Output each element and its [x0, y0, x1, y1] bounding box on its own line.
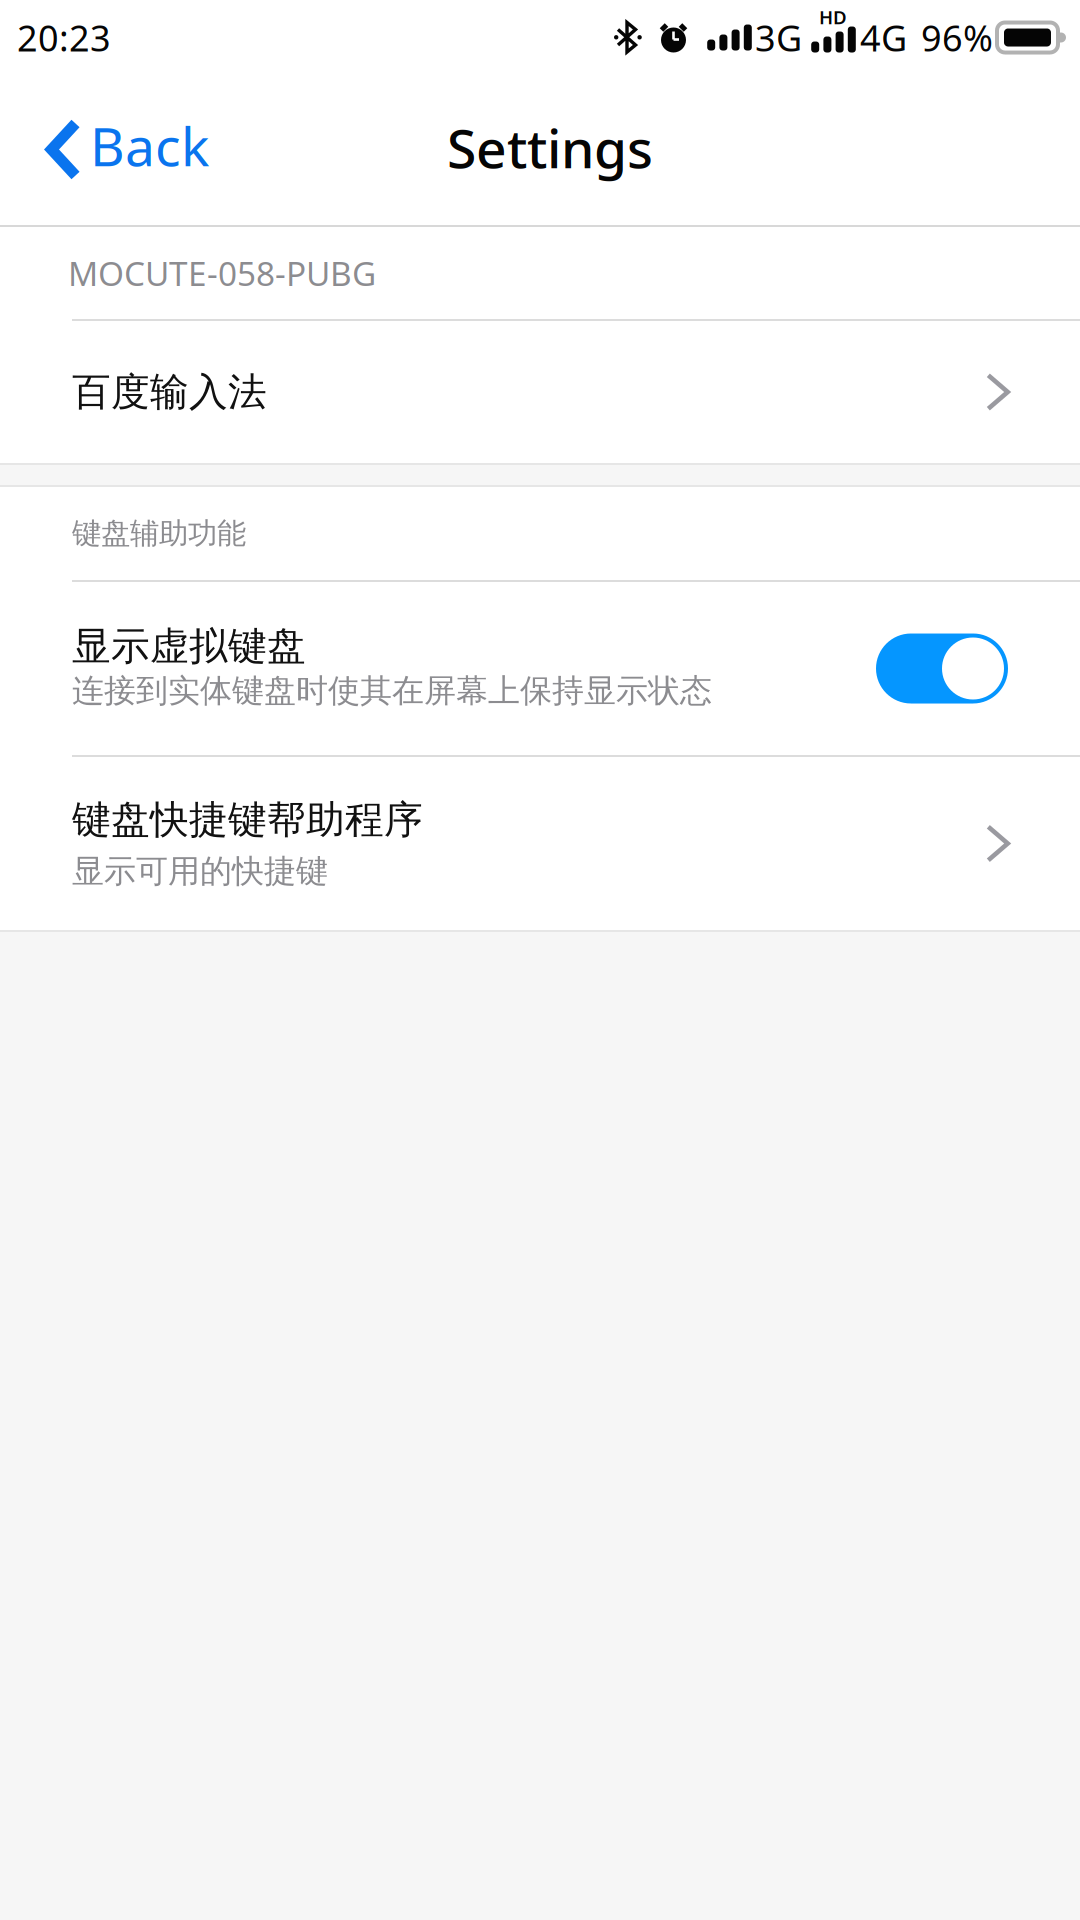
staticText: 显示可用的快捷键: [72, 852, 328, 891]
staticText: 20:23: [17, 14, 111, 61]
staticText: Back: [90, 110, 209, 181]
button[interactable]: 百度输入法: [0, 321, 1080, 463]
staticText: 3G: [755, 14, 802, 61]
staticText: 4G: [860, 14, 907, 61]
staticText: 百度输入法: [72, 368, 267, 416]
staticText: 连接到实体键盘时使其在屏幕上保持显示状态: [72, 671, 712, 710]
button[interactable]: Back: [0, 85, 239, 205]
button[interactable]: 键盘快捷键帮助程序: [0, 757, 1080, 930]
button[interactable]: 显示虚拟键盘: [0, 582, 1080, 755]
staticText: 96%: [921, 14, 993, 61]
staticText: 键盘快捷键帮助程序: [72, 796, 423, 844]
staticText: 显示虚拟键盘: [72, 623, 306, 670]
staticText: HD: [819, 5, 847, 29]
staticText: 键盘辅助功能: [72, 515, 246, 551]
staticText: MOCUTE-058-PUBG: [68, 251, 376, 295]
staticText: Settings: [447, 112, 653, 183]
